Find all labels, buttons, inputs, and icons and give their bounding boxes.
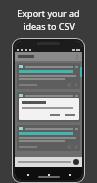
button[interactable]: Share: [17, 63, 80, 89]
button[interactable]: Share: [17, 125, 80, 151]
button[interactable]: Send: [73, 159, 79, 165]
button[interactable]: Navigation item: [23, 170, 32, 179]
button[interactable]: Edit: [74, 145, 78, 149]
button[interactable]: Edit: [74, 83, 78, 87]
button[interactable]: [49, 113, 61, 117]
button[interactable]: Navigation item: [65, 170, 74, 179]
button[interactable]: Navigation item: [44, 170, 53, 179]
button[interactable]: Share: [17, 92, 80, 122]
staticText: Export your ad: [17, 7, 80, 19]
button[interactable]: Share: [67, 83, 71, 87]
button[interactable]: Share: [67, 145, 71, 149]
button[interactable]: [64, 113, 76, 117]
staticText: ideas to CSV: [23, 20, 75, 32]
button[interactable]: More options: [75, 54, 79, 60]
